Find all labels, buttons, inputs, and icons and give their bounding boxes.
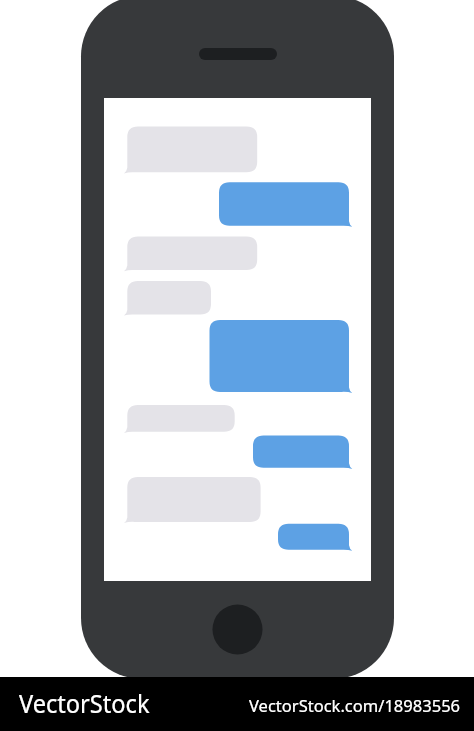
button[interactable]: Smartphone showing a chat conversation bbox=[0, 0, 474, 731]
